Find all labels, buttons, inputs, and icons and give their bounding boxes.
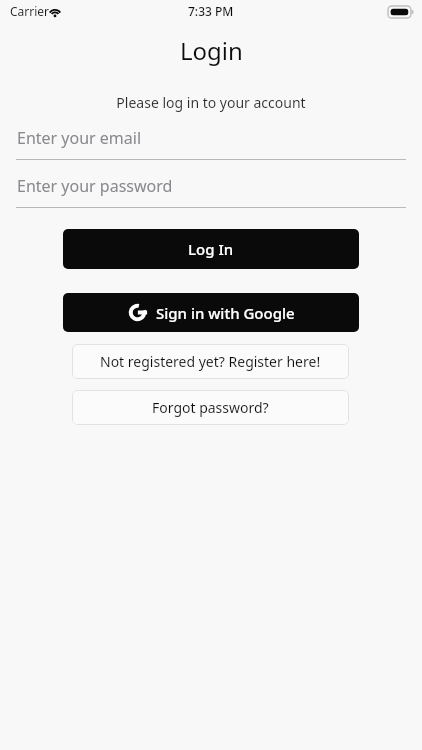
other: Battery [388,6,414,18]
staticText: Enter your email [17,127,142,149]
other: Google [128,303,147,322]
staticText: 7:33 PM [188,3,234,19]
staticText: Please log in to your account [116,93,306,112]
button[interactable]: Enter your password [16,170,406,208]
button[interactable]: Log In [63,229,359,269]
other: Wi-Fi [48,6,62,18]
button[interactable]: Enter your email [16,122,406,160]
staticText: Carrier [10,3,50,19]
staticText: Login [180,34,243,67]
button[interactable]: Forgot password? [72,390,349,425]
button[interactable]: Not registered yet? Register here! [72,344,349,379]
staticText: Not registered yet? Register here! [100,352,321,371]
staticText: Enter your password [17,175,173,197]
staticText: Sign in with Google [156,303,295,323]
button[interactable]: Google [63,293,359,332]
staticText: Log In [188,239,234,259]
staticText: Forgot password? [152,398,269,417]
